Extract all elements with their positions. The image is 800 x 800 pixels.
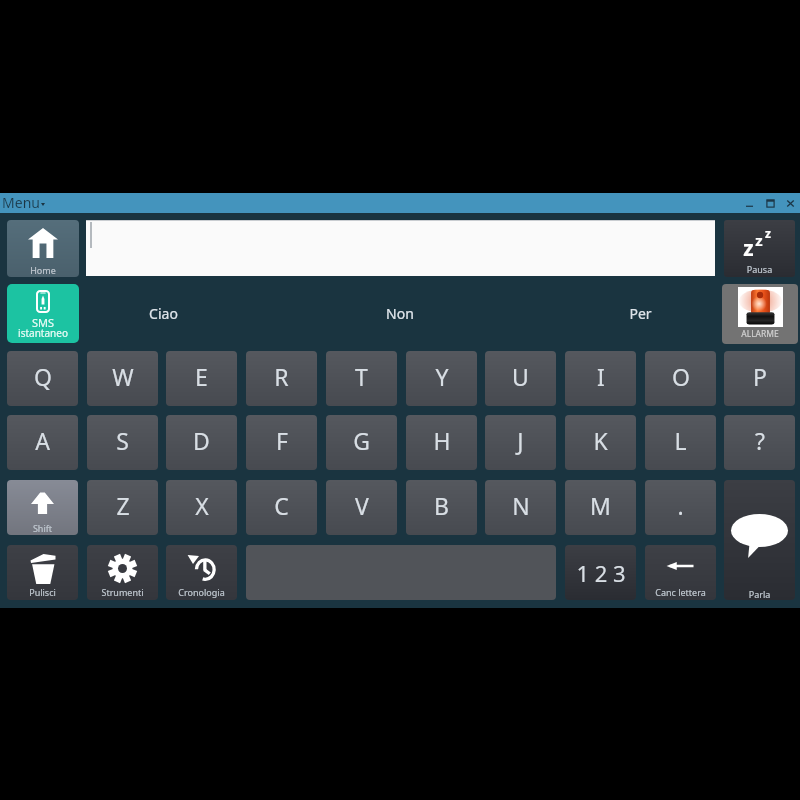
button[interactable]: E	[166, 351, 237, 406]
button[interactable]: Q	[7, 351, 78, 406]
staticText: z	[755, 230, 763, 250]
button[interactable]: O	[645, 351, 716, 406]
button[interactable]: Strumenti	[87, 545, 158, 600]
button[interactable]: F	[246, 415, 317, 470]
staticText: S	[116, 425, 129, 456]
staticText: ALLARME	[722, 328, 798, 340]
button[interactable]: Per	[540, 284, 740, 343]
button[interactable]: Home	[7, 220, 79, 277]
button[interactable]: Ciao	[63, 284, 263, 343]
button[interactable]: C	[246, 480, 317, 535]
button[interactable]: Cronologia	[166, 545, 237, 600]
staticText: Per	[629, 304, 652, 323]
staticText: K	[593, 425, 608, 456]
button[interactable]: B	[406, 480, 477, 535]
staticText: Y	[435, 361, 449, 392]
staticText: Pulisci	[7, 586, 78, 598]
button[interactable]: Y	[406, 351, 477, 406]
staticText: 1 2 3	[576, 558, 626, 588]
button[interactable]: Z	[87, 480, 158, 535]
button[interactable]: M	[565, 480, 636, 535]
button[interactable]: Shift	[7, 480, 78, 535]
staticText: SMS	[7, 315, 79, 330]
staticText: W	[112, 361, 134, 392]
staticText: A	[35, 425, 50, 456]
button[interactable]: S	[87, 415, 158, 470]
button[interactable]: V	[326, 480, 397, 535]
button[interactable]: ?	[724, 415, 795, 470]
staticText: Cronologia	[166, 586, 237, 598]
staticText: Strumenti	[87, 586, 158, 598]
button[interactable]	[86, 220, 715, 276]
button[interactable]: N	[485, 480, 556, 535]
button[interactable]: z	[724, 220, 795, 277]
staticText: D	[193, 425, 210, 456]
staticText: Shift	[7, 522, 78, 534]
staticText: Home	[7, 264, 79, 276]
button[interactable]: Minimize	[740, 193, 760, 213]
staticText: P	[753, 361, 767, 392]
staticText: Q	[34, 361, 52, 392]
staticText: ?	[755, 425, 765, 456]
staticText: Z	[116, 490, 130, 521]
staticText: V	[355, 490, 369, 521]
button[interactable]: T	[326, 351, 397, 406]
staticText: Pausa	[724, 263, 795, 275]
button[interactable]: R	[246, 351, 317, 406]
staticText: T	[355, 361, 368, 392]
staticText: G	[353, 425, 370, 456]
staticText: z	[765, 225, 771, 241]
button[interactable]: Maximize	[760, 193, 780, 213]
button[interactable]: J	[485, 415, 556, 470]
staticText: U	[512, 361, 529, 392]
button[interactable]: ALLARME	[722, 284, 798, 344]
staticText: C	[274, 490, 289, 521]
staticText: M	[590, 490, 611, 521]
staticText: N	[512, 490, 530, 521]
staticText: J	[517, 425, 524, 456]
button[interactable]: K	[565, 415, 636, 470]
staticText: Menu	[2, 193, 40, 212]
staticText: Canc lettera	[645, 586, 716, 598]
button[interactable]: U	[485, 351, 556, 406]
button[interactable]: SMS	[7, 284, 79, 343]
button[interactable]: .	[645, 480, 716, 535]
staticText: R	[274, 361, 289, 392]
staticText: z	[743, 234, 754, 263]
staticText: B	[434, 490, 449, 521]
staticText: istantaneo	[7, 326, 79, 340]
button[interactable]: I	[565, 351, 636, 406]
button[interactable]: D	[166, 415, 237, 470]
button[interactable]: 1 2 3	[565, 545, 636, 600]
button[interactable]: H	[406, 415, 477, 470]
button[interactable]: Canc lettera	[645, 545, 716, 600]
staticText: Parla	[724, 588, 795, 600]
staticText: I	[597, 361, 605, 392]
button[interactable]: A	[7, 415, 78, 470]
button[interactable]: Parla	[724, 480, 795, 600]
button[interactable]: Pulisci	[7, 545, 78, 600]
button[interactable]: Close	[780, 193, 800, 213]
button[interactable]: W	[87, 351, 158, 406]
staticText: E	[195, 361, 208, 392]
staticText: Non	[386, 304, 414, 323]
staticText: .	[677, 490, 684, 521]
staticText: L	[674, 425, 687, 456]
staticText: H	[433, 425, 451, 456]
button[interactable]: X	[166, 480, 237, 535]
button[interactable]: P	[724, 351, 795, 406]
staticText: O	[672, 361, 690, 392]
staticText: F	[276, 425, 288, 456]
staticText: Ciao	[149, 304, 178, 323]
button[interactable]: Non	[300, 284, 500, 343]
button[interactable]: L	[645, 415, 716, 470]
staticText: X	[195, 490, 209, 521]
button[interactable]: G	[326, 415, 397, 470]
